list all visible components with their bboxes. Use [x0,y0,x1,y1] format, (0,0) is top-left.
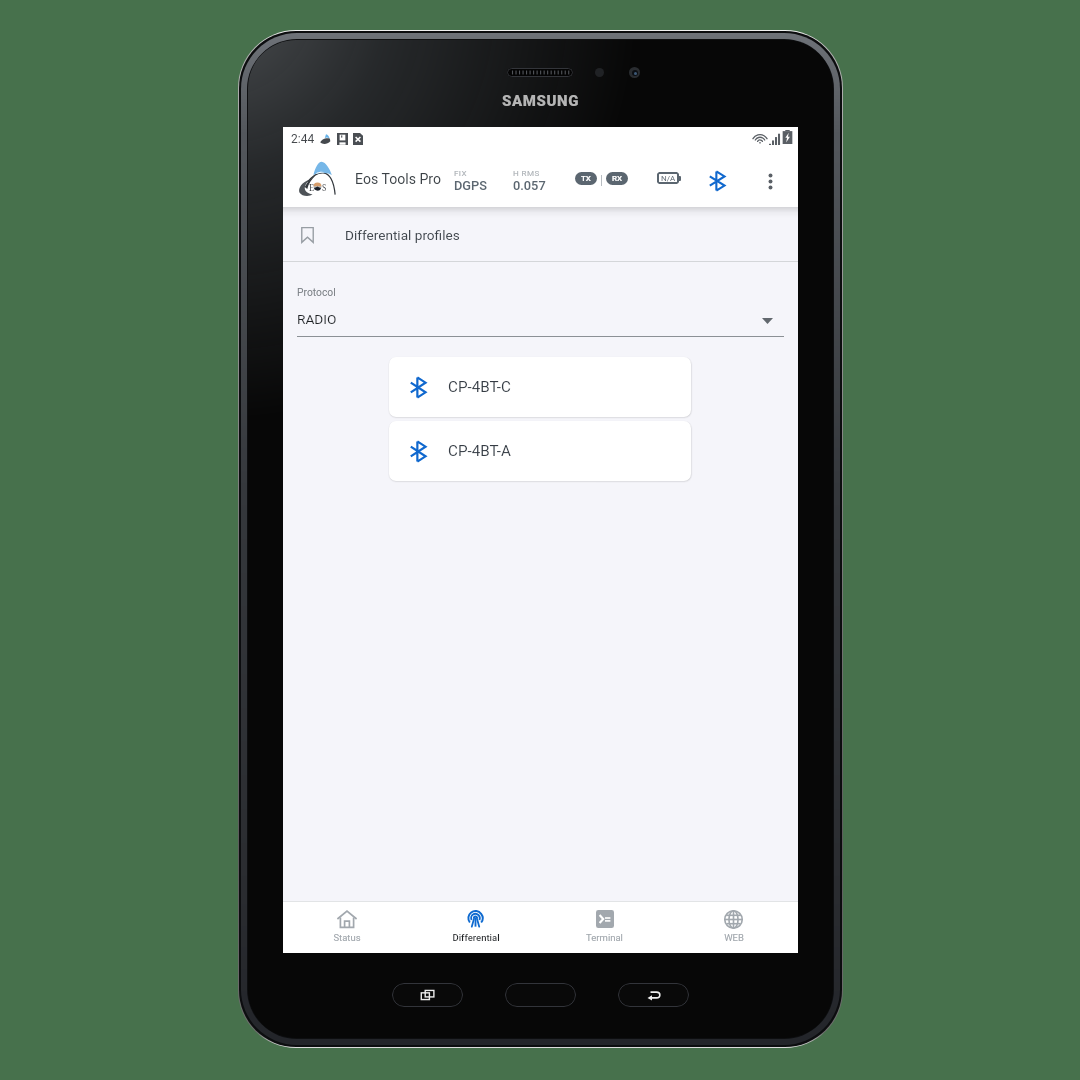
button[interactable]: More options [759,170,781,192]
button[interactable]: Differential profiles [283,207,798,262]
staticText: 2:44 [291,132,315,146]
staticText: CP-4BT-A [448,442,511,460]
button[interactable]: CP-4BT-C [389,357,691,417]
button[interactable]: Navigation key [618,983,689,1007]
staticText: TX [581,174,591,183]
staticText: RX [612,174,623,183]
button[interactable]: Protocol [283,127,798,357]
staticText: S [322,182,327,193]
staticText: E [309,182,314,193]
button[interactable]: Terminal [540,901,669,953]
button[interactable]: Differential [411,901,540,953]
staticText: Differential profiles [345,227,460,243]
button[interactable]: RX [606,172,628,185]
staticText: Eos Tools Pro [355,171,441,188]
staticText: 0.057 [513,178,546,193]
staticText: WEB [724,932,744,943]
staticText: Status [333,932,361,943]
staticText: Terminal [586,932,623,943]
staticText: FIX [454,168,468,177]
button[interactable]: Navigation key [505,983,576,1007]
staticText: Protocol [297,286,336,298]
staticText: RADIO [297,311,337,327]
button[interactable]: Navigation key [392,983,463,1007]
button[interactable]: CP-4BT-A [389,421,691,481]
button[interactable]: WEB [669,901,798,953]
staticText: H RMS [513,168,540,177]
button[interactable]: Status [283,901,411,953]
button[interactable]: Bluetooth [704,168,730,194]
staticText: SAMSUNG [502,92,580,110]
button[interactable]: TX [575,172,597,185]
staticText: CP-4BT-C [448,378,511,396]
staticText: N/A [661,174,676,183]
staticText: Differential [452,932,500,943]
staticText: DGPS [454,178,487,193]
